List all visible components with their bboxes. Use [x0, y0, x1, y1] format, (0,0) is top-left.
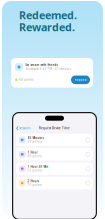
button[interactable]: 45 Minutes	[16, 134, 93, 146]
staticText: 70 points	[28, 183, 42, 187]
staticText: 45 Minutes	[28, 136, 44, 140]
staticText: 60 points	[19, 78, 33, 81]
staticText: 30 points	[28, 140, 42, 143]
staticText: 55 points	[28, 169, 42, 172]
staticText: Sessions	[19, 126, 30, 130]
button[interactable]: Request	[71, 75, 90, 84]
staticText: Request Device Time	[39, 126, 70, 130]
staticText: 2 Hours	[28, 179, 39, 183]
button[interactable]: Sessions	[16, 126, 30, 130]
button[interactable]: 1 Hour	[16, 148, 93, 160]
button[interactable]: 2 Hours	[16, 177, 93, 189]
staticText: 1 Hour 30 Min	[28, 165, 49, 169]
staticText: Rewarded.	[19, 20, 75, 34]
staticText: 1 Hour	[28, 151, 38, 154]
button[interactable]: 1 Hour 30 Min	[16, 162, 93, 175]
staticText: 40 points	[28, 154, 42, 158]
staticText: Request	[74, 78, 86, 81]
staticText: Redeemed.	[19, 8, 77, 22]
staticText: Tuesday at 3:30 PM · 30 minutes	[25, 67, 70, 71]
staticText: Ice cream with friends	[25, 63, 57, 67]
